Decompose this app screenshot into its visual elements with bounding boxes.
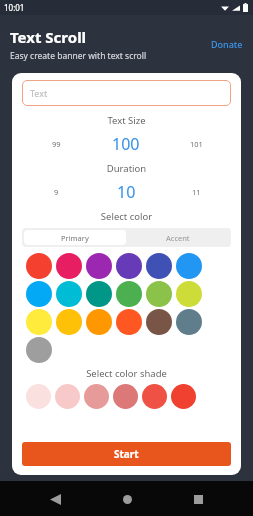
button[interactable]: Text	[22, 80, 231, 106]
staticText: 9	[54, 187, 59, 197]
button[interactable]: Select color	[146, 281, 172, 307]
button[interactable]: 11	[161, 187, 231, 197]
staticText: Text Size	[22, 114, 231, 127]
button[interactable]: Select color	[56, 309, 82, 335]
button[interactable]: Back	[38, 482, 72, 516]
button[interactable]: Select color	[56, 281, 82, 307]
button[interactable]: Select color	[26, 253, 52, 279]
staticText: Text Scroll	[10, 27, 87, 47]
button[interactable]: Select color	[86, 253, 112, 279]
button[interactable]: Select color	[116, 309, 142, 335]
button[interactable]: Start	[22, 442, 231, 466]
button[interactable]: Select color	[146, 309, 172, 335]
button[interactable]: Select color	[176, 281, 202, 307]
button[interactable]: Select shade	[26, 384, 51, 409]
staticText: Duration	[22, 162, 231, 175]
staticText: Select color	[22, 210, 231, 223]
button[interactable]: Select color	[26, 309, 52, 335]
button[interactable]: 101	[161, 139, 231, 149]
button[interactable]: Select color	[26, 337, 52, 363]
button[interactable]: Select shade	[84, 384, 109, 409]
button[interactable]: Select shade	[113, 384, 138, 409]
button[interactable]: Select color	[26, 281, 52, 307]
staticText: Text	[30, 87, 48, 99]
staticText: 11	[192, 187, 201, 197]
button[interactable]: Select color	[146, 253, 172, 279]
button[interactable]: Select shade	[142, 384, 167, 409]
button[interactable]: 100	[91, 133, 161, 155]
staticText: Select color shade	[22, 367, 231, 380]
button[interactable]: Donate	[207, 35, 247, 53]
staticText: Start	[114, 447, 139, 461]
button[interactable]: Select color	[86, 309, 112, 335]
button[interactable]: Recents	[181, 482, 215, 516]
button[interactable]: Select color	[116, 253, 142, 279]
button[interactable]: Home	[110, 482, 144, 516]
button[interactable]: 99	[22, 139, 91, 149]
staticText: Accent	[166, 233, 190, 243]
staticText: 101	[190, 139, 203, 149]
button[interactable]: Select color	[176, 253, 202, 279]
button[interactable]: Accent	[126, 230, 229, 245]
button[interactable]: 9	[22, 187, 91, 197]
staticText: 100	[112, 133, 140, 155]
button[interactable]: Select shade	[55, 384, 80, 409]
button[interactable]: Select color	[86, 281, 112, 307]
staticText: Easy create banner with text scroll	[10, 50, 147, 62]
button[interactable]: 10	[91, 181, 161, 203]
button[interactable]: Select color	[116, 281, 142, 307]
button[interactable]: Select shade	[171, 384, 196, 409]
button[interactable]: Select color	[56, 253, 82, 279]
staticText: 99	[52, 139, 61, 149]
staticText: 10:01	[4, 2, 25, 13]
button[interactable]: Primary	[24, 230, 126, 245]
staticText: Donate	[211, 38, 243, 50]
button[interactable]: Select color	[176, 309, 202, 335]
staticText: 10	[117, 181, 136, 203]
staticText: Primary	[61, 233, 89, 243]
